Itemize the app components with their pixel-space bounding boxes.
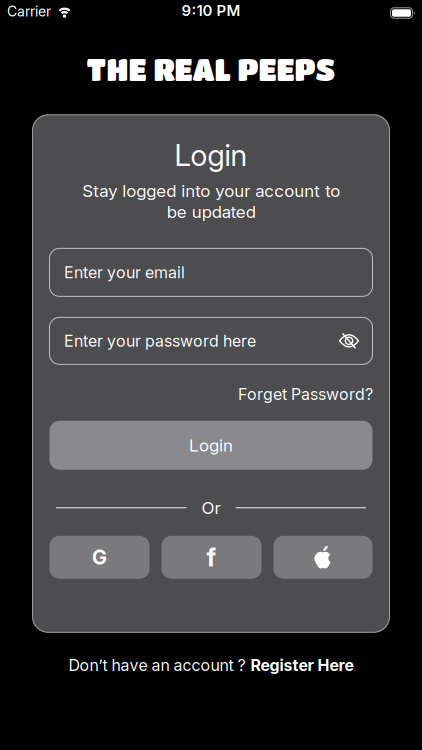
button[interactable]: Continue with Apple — [273, 536, 372, 579]
staticText: Enter your email — [64, 263, 185, 282]
button[interactable]: Continue with Facebook — [161, 536, 261, 579]
staticText: Or — [201, 498, 220, 518]
staticText: 9:10 PM — [181, 2, 240, 19]
button[interactable]: Register Here — [250, 656, 353, 675]
staticText: Forget Password? — [238, 385, 373, 404]
staticText: f — [206, 542, 216, 572]
button[interactable]: Login — [49, 421, 372, 470]
staticText: Register Here — [250, 656, 353, 675]
button[interactable]: Show password — [338, 332, 360, 350]
staticText: THE REAL PEEPS — [86, 52, 335, 86]
staticText: Stay logged into your account to be upda… — [82, 181, 340, 222]
staticText: Login — [189, 435, 233, 455]
staticText: Login — [174, 137, 247, 173]
button[interactable]: Continue with Google — [49, 536, 149, 579]
button[interactable]: Enter your email — [49, 248, 373, 297]
staticText: Carrier — [7, 3, 51, 20]
staticText: Enter your password here — [64, 331, 256, 350]
button[interactable]: Forget Password? — [238, 385, 373, 404]
staticText: Don’t have an account ? — [68, 656, 245, 675]
staticText: G — [92, 545, 107, 569]
button[interactable]: Enter your password here — [49, 317, 373, 365]
